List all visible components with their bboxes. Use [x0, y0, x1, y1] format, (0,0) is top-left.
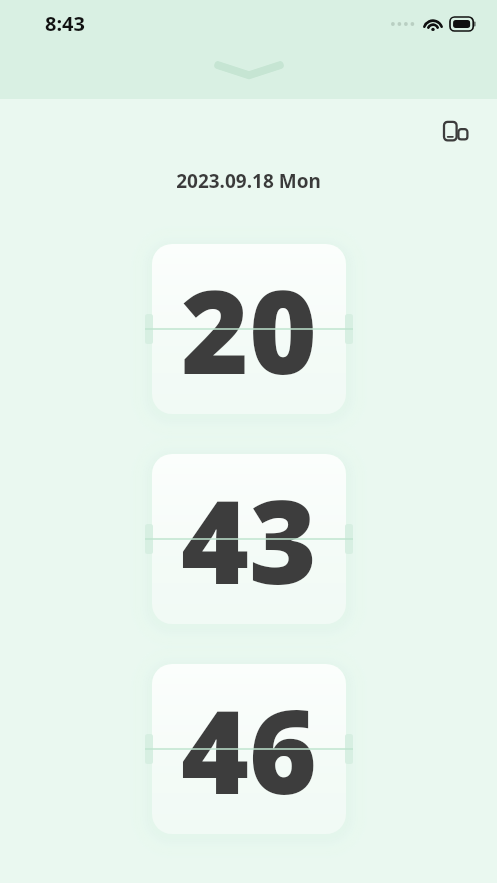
staticText: 43	[181, 460, 317, 618]
button[interactable]: 46	[152, 664, 346, 834]
staticText: 2023.09.18 Mon	[176, 168, 321, 194]
staticText: 20	[181, 250, 317, 408]
button[interactable]: 43	[152, 454, 346, 624]
button[interactable]: 20	[152, 244, 346, 414]
button[interactable]: Cast to another screen	[432, 108, 480, 156]
button[interactable]: 2023.09.18 Mon	[0, 168, 497, 194]
staticText: 8:43	[45, 10, 85, 37]
staticText: 46	[181, 670, 317, 828]
